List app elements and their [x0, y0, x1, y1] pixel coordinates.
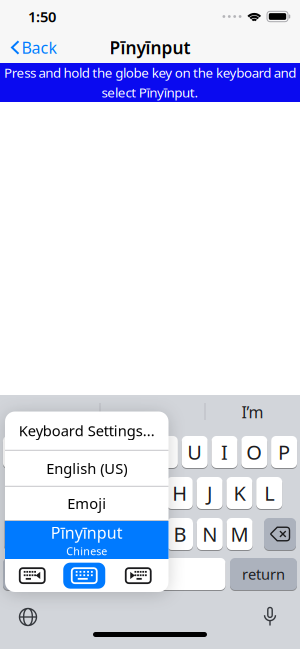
staticText: E — [70, 439, 81, 465]
button[interactable]: Pīnyīnput — [5, 521, 168, 559]
button[interactable]: J — [197, 477, 223, 509]
button[interactable]: Q — [3, 436, 29, 468]
button[interactable]: Shift — [4, 518, 36, 550]
staticText: Emoji — [67, 494, 106, 513]
staticText: O — [246, 439, 262, 465]
staticText: X — [85, 521, 97, 547]
staticText: Back — [21, 37, 57, 58]
staticText: Q — [8, 439, 24, 465]
button[interactable]: B — [167, 518, 193, 550]
button[interactable]: X — [78, 518, 104, 550]
button[interactable]: R — [92, 436, 118, 468]
staticText: A — [24, 480, 37, 506]
button[interactable]: N — [197, 518, 223, 550]
staticText: R — [99, 439, 111, 465]
staticText: P — [278, 439, 290, 465]
button[interactable]: V — [137, 518, 163, 550]
staticText: 123 — [23, 563, 50, 585]
staticText: D — [83, 480, 98, 506]
button[interactable]: English (US) — [5, 451, 168, 486]
button[interactable]: Dictation — [263, 607, 276, 626]
staticText: Pīnyīnput — [109, 36, 190, 59]
staticText: H — [172, 480, 187, 506]
staticText: L — [264, 480, 274, 506]
button[interactable]: Z — [48, 518, 74, 550]
staticText: select Pīnyīnput. — [101, 83, 198, 101]
button[interactable]: P — [271, 436, 297, 468]
button[interactable]: Emoji — [5, 487, 168, 520]
staticText: G — [142, 480, 157, 506]
button[interactable]: K — [226, 477, 252, 509]
button[interactable]: Dock keyboard — [59, 559, 114, 592]
button[interactable]: return — [230, 558, 297, 590]
button[interactable]: Back — [0, 37, 57, 58]
button[interactable]: I — [211, 436, 237, 468]
staticText: K — [233, 480, 245, 506]
staticText: F — [115, 480, 125, 506]
staticText: W — [36, 439, 55, 465]
staticText: 1:50 — [28, 7, 56, 26]
staticText: I — [221, 439, 228, 465]
button[interactable]: D — [77, 477, 103, 509]
button[interactable]: Dock keyboard left — [5, 559, 59, 592]
staticText: C — [114, 521, 127, 547]
staticText: U — [187, 439, 202, 465]
button[interactable]: 123 — [3, 558, 70, 590]
button[interactable]: Y — [152, 436, 178, 468]
staticText: T — [130, 439, 141, 465]
button[interactable]: G — [137, 477, 163, 509]
button[interactable]: H — [167, 477, 193, 509]
button[interactable]: L — [256, 477, 282, 509]
button[interactable]: U — [182, 436, 208, 468]
button[interactable]: C — [107, 518, 133, 550]
staticText: I’m — [241, 401, 263, 423]
button[interactable]: O — [241, 436, 267, 468]
button[interactable]: M — [227, 518, 253, 550]
button[interactable]: W — [33, 436, 59, 468]
button[interactable]: Next keyboard — [18, 607, 37, 626]
staticText: return — [242, 564, 285, 584]
button[interactable]: E — [62, 436, 88, 468]
button[interactable]: Dock keyboard right — [114, 559, 168, 592]
button[interactable]: S — [48, 477, 74, 509]
staticText: English (US) — [46, 459, 127, 478]
staticText: J — [207, 480, 212, 506]
staticText: M — [231, 521, 249, 547]
button[interactable]: I’m — [212, 399, 292, 425]
staticText: Keyboard Settings... — [19, 421, 155, 440]
button[interactable]: Space — [74, 558, 225, 590]
button[interactable]: A — [18, 477, 44, 509]
staticText: Pīnyīnput — [51, 522, 123, 543]
staticText: N — [202, 521, 217, 547]
button[interactable]: T — [122, 436, 148, 468]
staticText: Chinese — [66, 544, 107, 558]
staticText: Z — [55, 521, 66, 547]
staticText: B — [173, 521, 186, 547]
button[interactable]: Keyboard Settings... — [5, 411, 168, 450]
button[interactable]: Delete — [264, 518, 296, 550]
staticText: Press and hold the globe key on the keyb… — [4, 64, 296, 81]
staticText: S — [55, 480, 66, 506]
button[interactable]: F — [107, 477, 133, 509]
